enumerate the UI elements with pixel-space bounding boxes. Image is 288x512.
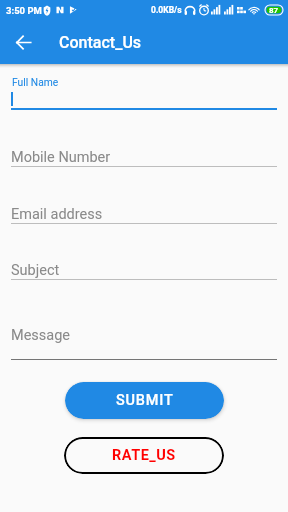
button[interactable]: Back [6,25,40,59]
staticText: Subject [11,262,60,279]
button[interactable]: Email address [11,167,277,224]
staticText: Contact_Us [59,33,142,52]
button[interactable]: Mobile Number [11,110,277,167]
button[interactable]: Message [11,280,277,360]
button[interactable]: SUBMIT [65,382,224,419]
staticText: SUBMIT [116,392,174,409]
button[interactable]: RATE_US [64,437,224,474]
button[interactable]: Full Name [11,64,277,110]
staticText: 3:50 PM [6,5,42,16]
button[interactable]: Subject [11,224,277,280]
staticText: Mobile Number [11,149,111,166]
staticText: Message [11,327,71,344]
staticText: Email address [11,206,103,223]
staticText: RATE_US [112,447,176,464]
staticText: Full Name [12,76,59,88]
staticText: 87 [269,6,279,15]
staticText: 0.0KB/s [151,5,182,15]
